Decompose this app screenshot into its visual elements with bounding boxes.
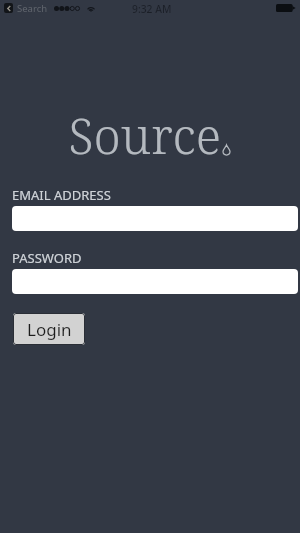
staticText: Login <box>27 318 72 341</box>
staticText: 9:32 AM <box>132 2 172 16</box>
staticText: EMAIL ADDRESS <box>12 186 111 204</box>
button[interactable] <box>12 206 298 231</box>
button[interactable]: Back <box>4 3 13 13</box>
staticText: Search <box>17 2 48 15</box>
button[interactable] <box>12 269 298 294</box>
staticText: PASSWORD <box>12 249 82 267</box>
staticText: Source <box>68 102 221 169</box>
button[interactable]: Login <box>13 313 85 345</box>
